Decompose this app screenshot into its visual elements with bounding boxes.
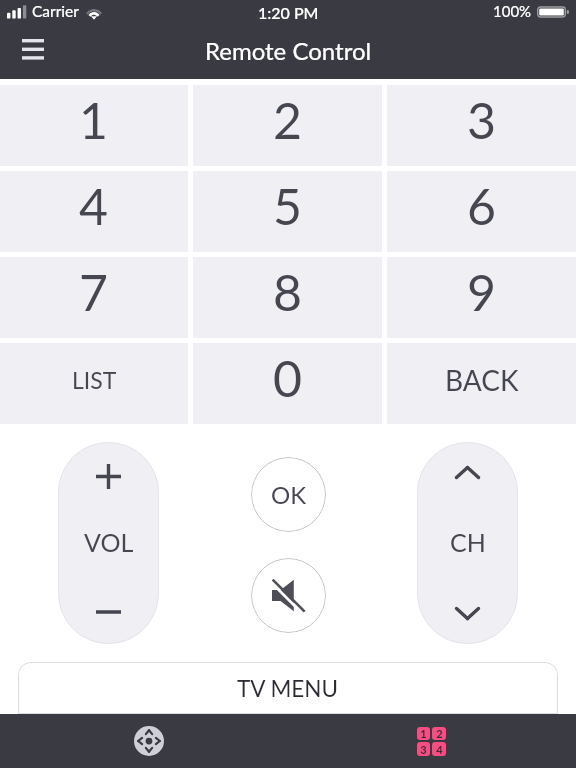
staticText: 2 (273, 90, 303, 150)
staticText: 4 (436, 743, 443, 756)
staticText: 8 (273, 262, 303, 322)
button[interactable]: 6 (387, 171, 576, 252)
button[interactable]: 5 (193, 171, 382, 252)
staticText: 1 (79, 90, 109, 150)
staticText: 6 (467, 176, 497, 236)
button[interactable]: TV MENU (18, 662, 558, 714)
staticText: TV MENU (237, 675, 339, 702)
button[interactable]: LIST (0, 343, 188, 424)
button[interactable]: 4 (0, 171, 188, 252)
staticText: 9 (467, 262, 497, 322)
staticText: Carrier (32, 2, 79, 21)
staticText: VOL (84, 527, 134, 557)
button[interactable]: BACK (387, 343, 576, 424)
button[interactable]: CH (417, 442, 518, 644)
staticText: 1 (420, 727, 427, 740)
staticText: LIST (72, 366, 117, 394)
staticText: 3 (467, 90, 497, 150)
staticText: BACK (445, 363, 519, 397)
staticText: CH (450, 527, 486, 557)
staticText: Remote Control (205, 36, 372, 65)
button[interactable]: 0 (193, 343, 382, 424)
button[interactable]: 2 (193, 85, 382, 166)
button[interactable]: D-pad navigation (8, 714, 290, 768)
button[interactable]: Number keypad (290, 714, 572, 768)
staticText: 0 (273, 348, 303, 408)
staticText: 2 (436, 727, 443, 740)
staticText: 3 (420, 743, 427, 756)
staticText: OK (271, 480, 307, 509)
staticText: 5 (273, 176, 303, 236)
button[interactable]: 8 (193, 257, 382, 338)
button[interactable]: VOL (58, 442, 159, 644)
button[interactable]: OK (251, 457, 326, 532)
button[interactable]: 3 (387, 85, 576, 166)
button[interactable]: 1 (0, 85, 188, 166)
staticText: 7 (79, 262, 109, 322)
staticText: 100% (493, 2, 532, 20)
button[interactable]: 7 (0, 257, 188, 338)
button[interactable]: Open navigation menu (11, 30, 55, 74)
button[interactable]: 9 (387, 257, 576, 338)
staticText: 4 (79, 176, 109, 236)
staticText: 1:20 PM (258, 3, 319, 22)
button[interactable]: Mute (251, 558, 326, 633)
